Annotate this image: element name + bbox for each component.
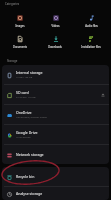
button[interactable]: OneDrive [2,105,109,124]
staticText: Audio files [85,24,98,28]
staticText: Network storage [16,152,44,157]
button[interactable]: Analyse storage [2,187,109,200]
staticText: Not working, account invalid [16,116,47,119]
button[interactable]: Videos [37,14,73,28]
staticText: Installation files [81,45,101,49]
staticText: Google Drive [16,130,38,135]
staticText: Downloads [48,45,62,49]
button[interactable]: Documents [2,35,37,49]
button[interactable]: Images [2,14,37,28]
button[interactable]: SD card [2,85,109,104]
button[interactable]: Network storage [2,145,109,164]
button[interactable]: Audio files [73,14,109,28]
staticText: OneDrive [16,110,32,115]
staticText: Categories [5,2,20,6]
staticText: Internal storage [16,70,43,75]
button[interactable]: Recycle bin [2,167,109,186]
staticText: Documents [13,45,27,49]
staticText: Videos [51,24,60,28]
button[interactable]: Internal storage [2,65,109,84]
staticText: 10.30 GB free [16,136,31,139]
staticText: SD card [16,90,29,95]
staticText: APK [89,36,95,42]
staticText: Storage [7,59,18,63]
staticText: Analyse storage [16,191,43,196]
staticText: 13 GB / 128 GB [16,76,33,79]
button[interactable]: Downloads [37,35,73,49]
staticText: Recycle bin [16,174,35,179]
button[interactable]: Google Drive [2,125,109,144]
staticText: Images [15,24,25,28]
staticText: 44.44 GB / 119 GB [16,96,36,99]
button[interactable]: APK [73,35,109,49]
